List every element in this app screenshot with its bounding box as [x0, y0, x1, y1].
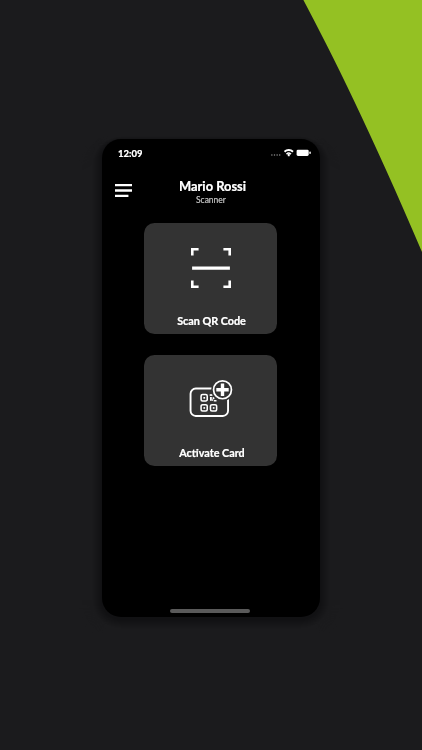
staticText: Activate Card — [179, 446, 245, 459]
staticText: Scan QR Code — [177, 314, 246, 327]
button[interactable]: Scan QR Code — [144, 223, 277, 334]
staticText: 12:09 — [118, 148, 143, 159]
button[interactable]: Menu — [107, 176, 139, 204]
staticText: Scanner — [196, 195, 226, 205]
staticText: Mario Rossi — [179, 178, 247, 193]
button[interactable]: Activate Card — [144, 355, 277, 466]
